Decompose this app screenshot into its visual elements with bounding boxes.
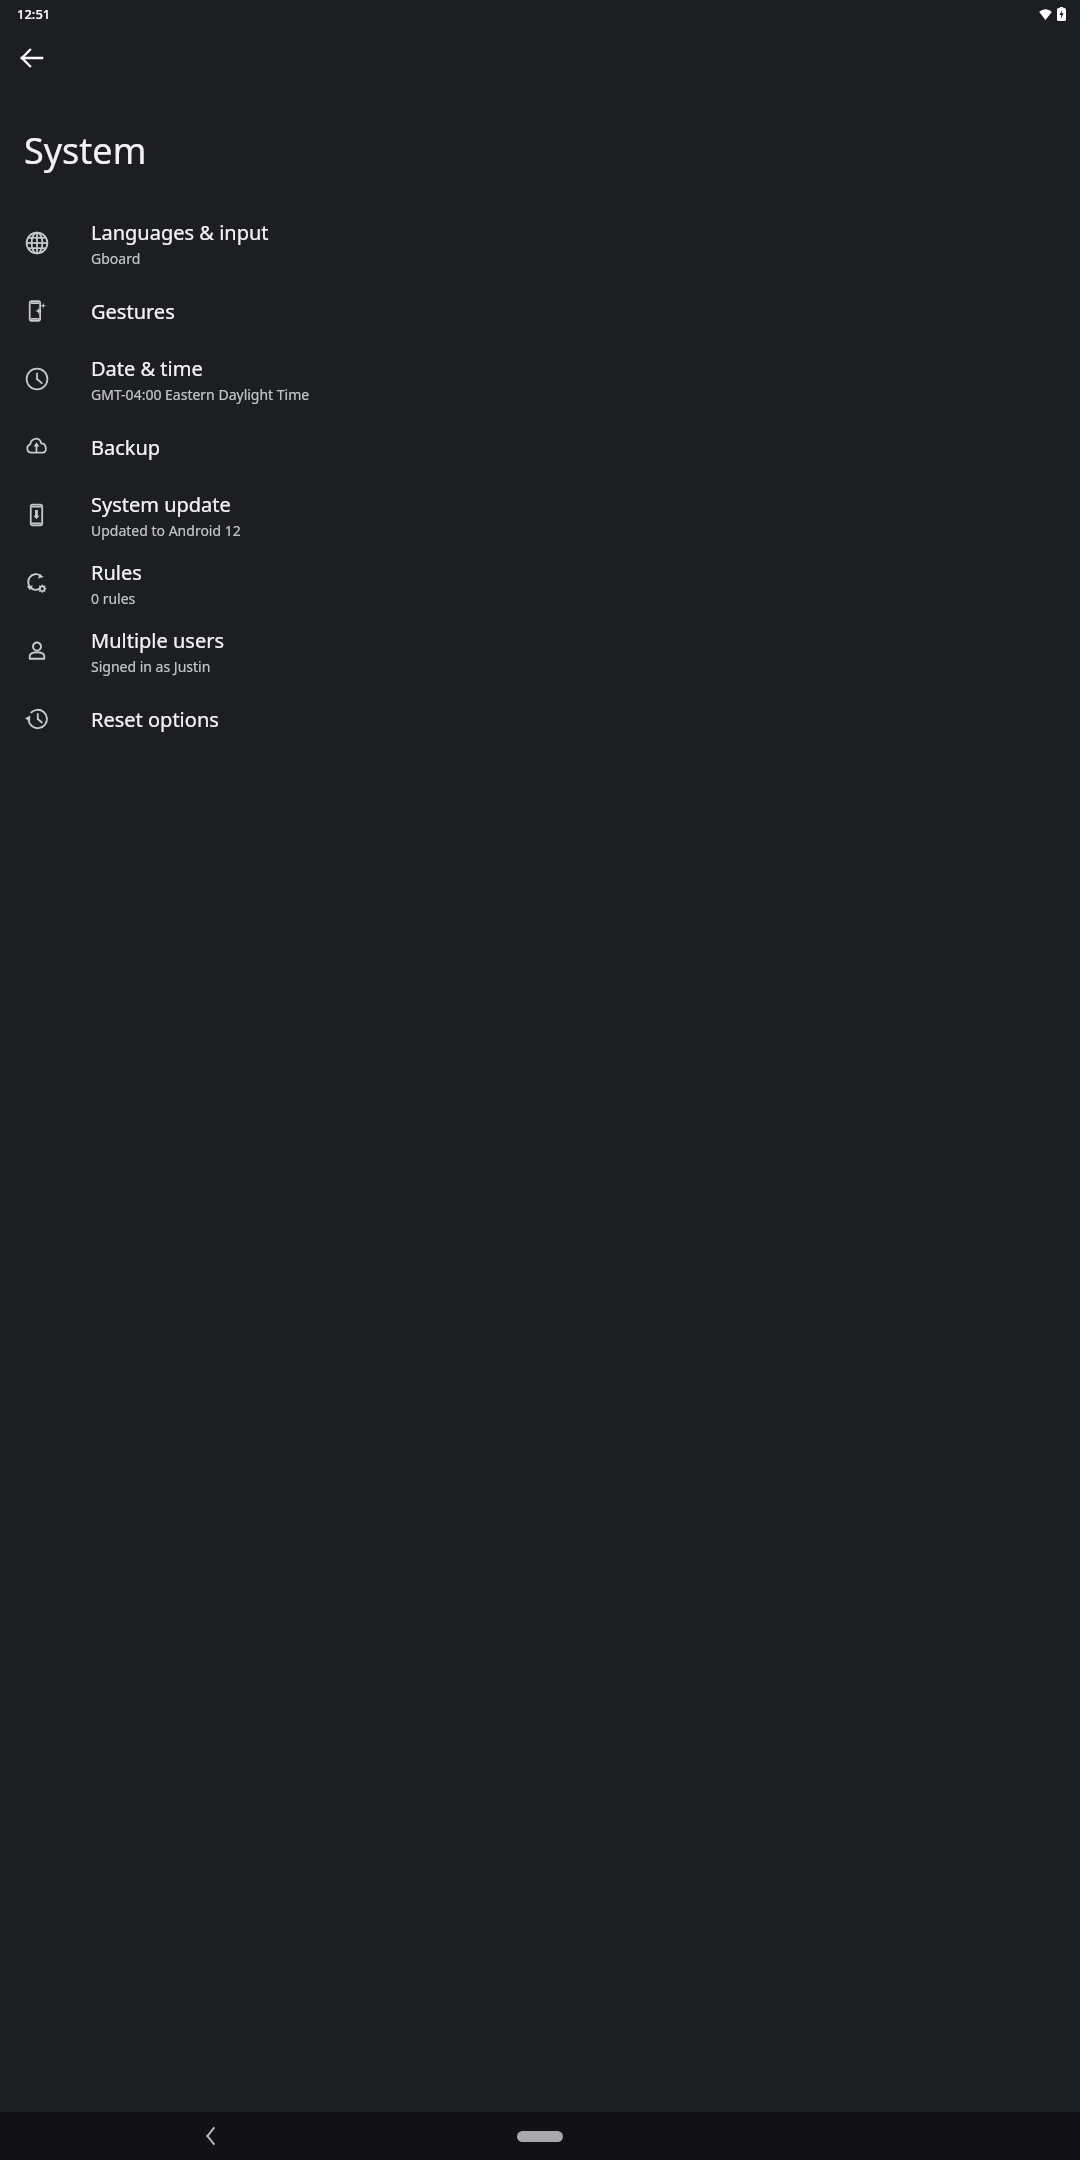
staticText: 12:51 — [17, 5, 51, 23]
button[interactable]: Back — [8, 34, 56, 82]
staticText: Backup — [91, 434, 161, 461]
staticText: System update — [91, 491, 231, 518]
button[interactable]: Back — [190, 2116, 230, 2156]
button[interactable]: Backup — [0, 413, 1080, 481]
staticText: Languages & input — [91, 219, 269, 246]
staticText: System — [24, 126, 147, 175]
staticText: Multiple users — [91, 627, 225, 654]
staticText: Gestures — [91, 298, 175, 325]
button[interactable]: Languages & input — [0, 209, 1080, 277]
button[interactable]: System update — [0, 481, 1080, 549]
staticText: Reset options — [91, 706, 219, 733]
button[interactable]: Date & time — [0, 345, 1080, 413]
button[interactable]: Multiple users — [0, 617, 1080, 685]
staticText: Signed in as Justin — [91, 657, 211, 676]
staticText: Date & time — [91, 355, 203, 382]
button[interactable]: Reset options — [0, 685, 1080, 753]
staticText: Rules — [91, 559, 142, 586]
staticText: Gboard — [91, 249, 141, 268]
staticText: Updated to Android 12 — [91, 521, 241, 540]
staticText: 0 rules — [91, 589, 136, 608]
button[interactable]: Gestures — [0, 277, 1080, 345]
button[interactable]: Home — [500, 2118, 580, 2154]
staticText: GMT-04:00 Eastern Daylight Time — [91, 385, 310, 404]
button[interactable]: Rules — [0, 549, 1080, 617]
